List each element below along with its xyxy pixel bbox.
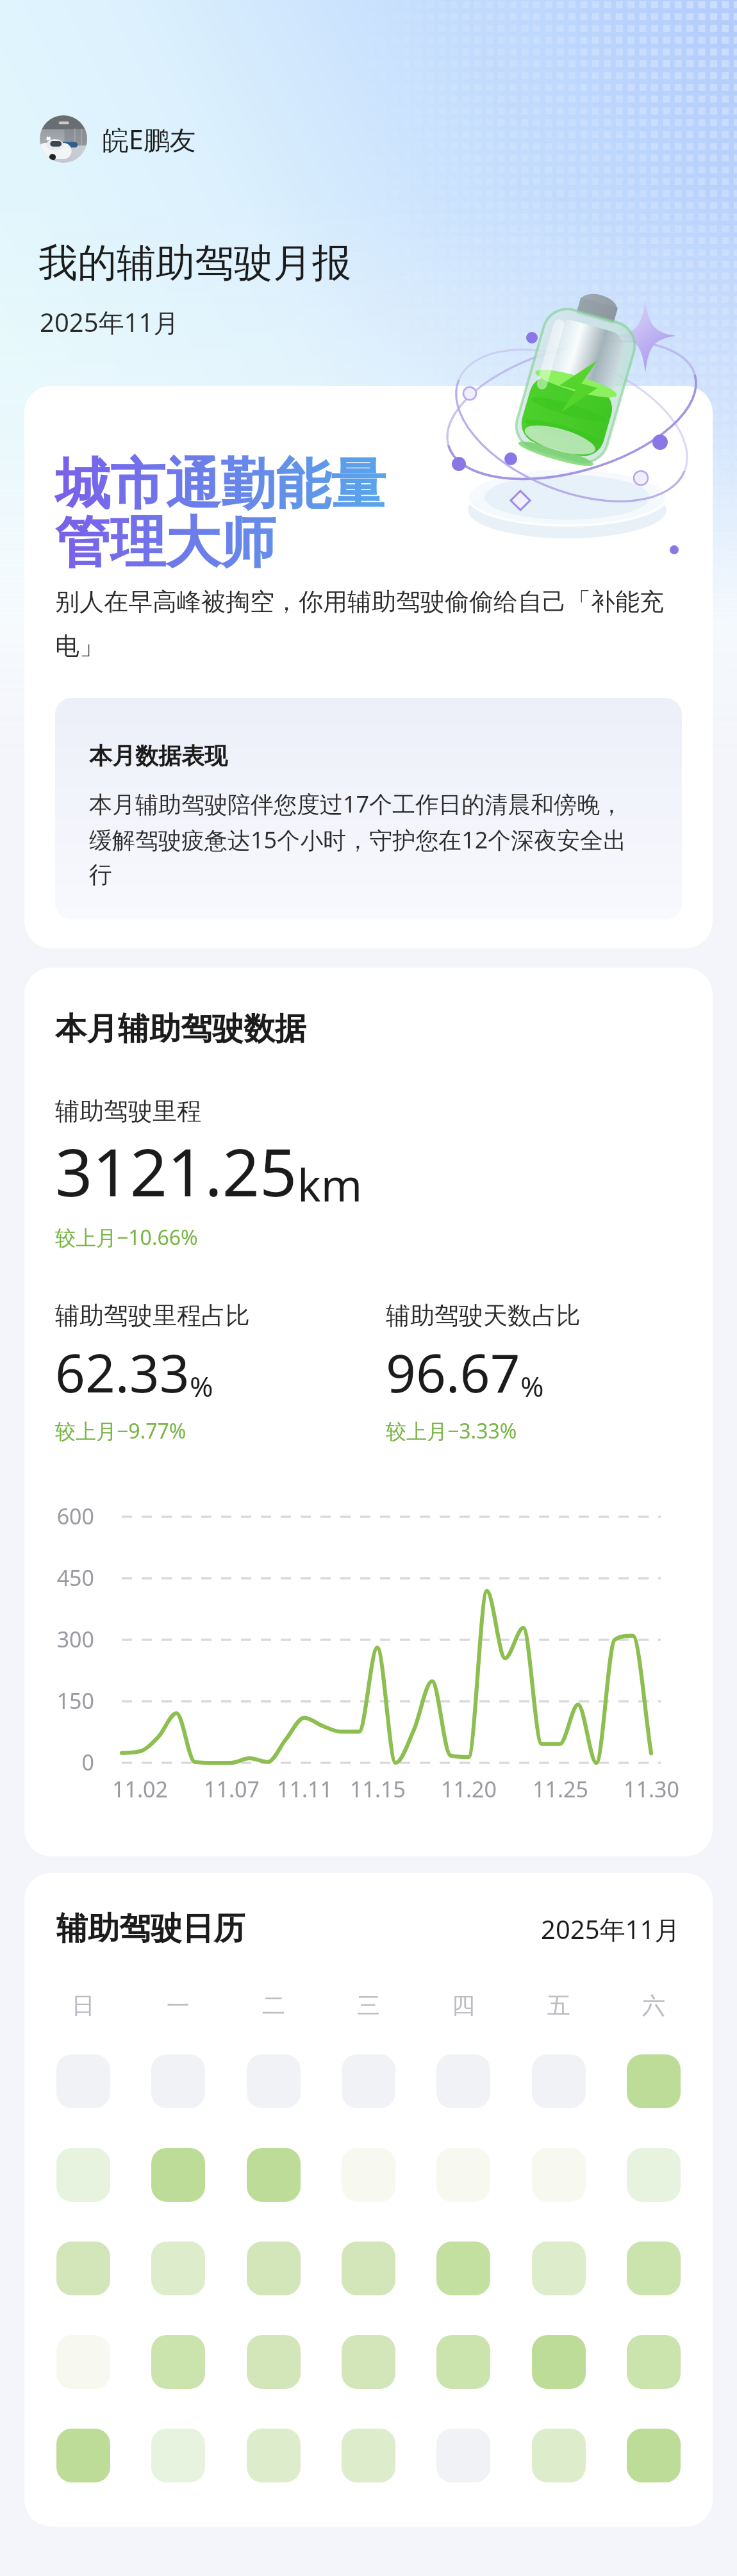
- button[interactable]: [247, 2054, 301, 2108]
- button[interactable]: [151, 2429, 205, 2482]
- staticText: 11.02: [112, 1774, 168, 1804]
- staticText: 六: [642, 1991, 665, 2020]
- button[interactable]: [627, 2054, 681, 2108]
- staticText: 别人在早高峰被掏空，你用辅助驾驶偷偷给自己「补能充电」: [55, 586, 682, 662]
- button[interactable]: [247, 2335, 301, 2389]
- staticText: 城市通勤能量 管理大师: [55, 450, 386, 577]
- button[interactable]: [627, 2148, 681, 2202]
- staticText: 二: [262, 1991, 285, 2020]
- staticText: 本月辅助驾驶数据: [55, 1009, 306, 1049]
- button[interactable]: [436, 2148, 490, 2202]
- button[interactable]: [342, 2335, 395, 2389]
- button[interactable]: [151, 2335, 205, 2389]
- staticText: 11.25: [533, 1774, 588, 1804]
- button[interactable]: [56, 2429, 110, 2482]
- staticText: 辅助驾驶里程: [55, 1096, 201, 1127]
- button[interactable]: [532, 2242, 586, 2295]
- staticText: 11.11: [277, 1774, 333, 1804]
- staticText: 600: [55, 1501, 94, 1531]
- button[interactable]: [151, 2148, 205, 2202]
- staticText: 辅助驾驶天数占比: [386, 1300, 581, 1331]
- staticText: %: [520, 1367, 544, 1405]
- button[interactable]: [532, 2335, 586, 2389]
- staticText: 150: [55, 1686, 94, 1715]
- button[interactable]: [151, 2242, 205, 2295]
- button[interactable]: [56, 2242, 110, 2295]
- button[interactable]: [342, 2054, 395, 2108]
- button[interactable]: [436, 2242, 490, 2295]
- staticText: 11.07: [204, 1774, 260, 1804]
- button[interactable]: [532, 2148, 586, 2202]
- button[interactable]: [247, 2148, 301, 2202]
- button[interactable]: [532, 2429, 586, 2482]
- staticText: 一: [167, 1991, 190, 2020]
- staticText: 皖E鹏友: [103, 121, 196, 157]
- staticText: 五: [547, 1991, 570, 2020]
- button[interactable]: [436, 2429, 490, 2482]
- staticText: 日: [72, 1991, 95, 2020]
- staticText: %: [190, 1367, 213, 1405]
- button[interactable]: [342, 2148, 395, 2202]
- staticText: 本月数据表现: [89, 741, 228, 770]
- staticText: 四: [452, 1991, 475, 2020]
- staticText: 辅助驾驶里程占比: [55, 1300, 250, 1331]
- staticText: 较上月−3.33%: [386, 1417, 517, 1445]
- staticText: 11.30: [624, 1774, 679, 1804]
- button[interactable]: [56, 2054, 110, 2108]
- staticText: 300: [55, 1624, 94, 1654]
- staticText: 较上月−9.77%: [55, 1417, 186, 1445]
- button[interactable]: [247, 2429, 301, 2482]
- staticText: 较上月−10.66%: [55, 1223, 198, 1251]
- button[interactable]: [342, 2242, 395, 2295]
- staticText: 辅助驾驶日历: [56, 1909, 245, 1949]
- staticText: 62.33: [55, 1336, 190, 1408]
- staticText: 三: [357, 1991, 380, 2020]
- staticText: 本月辅助驾驶陪伴您度过17个工作日的清晨和傍晚，缓解驾驶疲惫达15个小时，守护您…: [89, 788, 627, 889]
- button[interactable]: 皖E鹏友: [40, 115, 196, 163]
- button[interactable]: [627, 2242, 681, 2295]
- staticText: km: [297, 1154, 363, 1214]
- button[interactable]: [436, 2054, 490, 2108]
- button[interactable]: [627, 2335, 681, 2389]
- staticText: 3121.25: [55, 1127, 297, 1216]
- staticText: 2025年11月: [40, 304, 179, 340]
- button[interactable]: [532, 2054, 586, 2108]
- staticText: 0: [55, 1747, 94, 1777]
- button[interactable]: [342, 2429, 395, 2482]
- button[interactable]: [436, 2335, 490, 2389]
- staticText: 我的辅助驾驶月报: [38, 238, 351, 288]
- button[interactable]: [247, 2242, 301, 2295]
- button[interactable]: [151, 2054, 205, 2108]
- staticText: 96.67: [386, 1336, 520, 1408]
- staticText: 2025年11月: [541, 1911, 681, 1947]
- staticText: 450: [55, 1563, 94, 1592]
- button[interactable]: [627, 2429, 681, 2482]
- button[interactable]: [56, 2335, 110, 2389]
- button[interactable]: [56, 2148, 110, 2202]
- staticText: 11.20: [441, 1774, 497, 1804]
- staticText: 11.15: [350, 1774, 406, 1804]
